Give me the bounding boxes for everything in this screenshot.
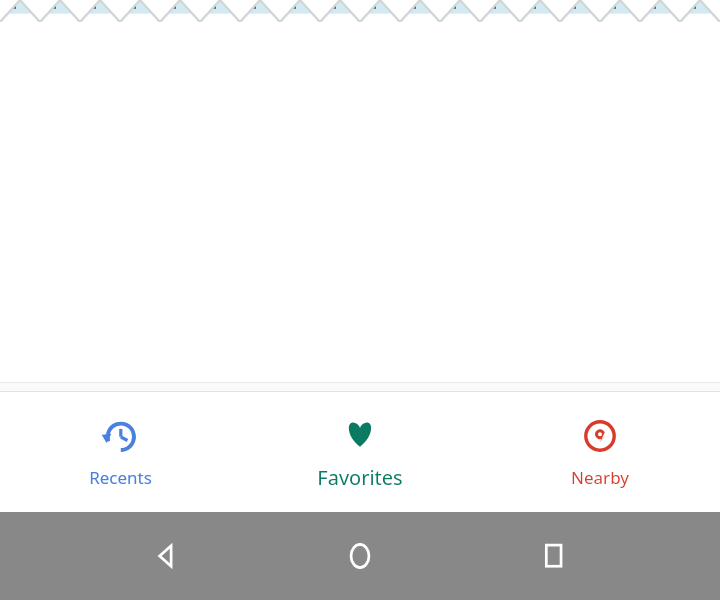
button[interactable]: Recent apps <box>526 528 582 584</box>
button[interactable]: Nearby <box>480 408 720 497</box>
staticText: Nearby <box>571 466 629 489</box>
staticText: Favorites <box>317 464 403 491</box>
staticText: Recents <box>89 466 152 489</box>
button[interactable]: Home <box>332 528 388 584</box>
button[interactable]: Favorites <box>240 406 480 499</box>
button[interactable]: Back <box>138 528 194 584</box>
button[interactable]: Recents <box>0 408 240 497</box>
